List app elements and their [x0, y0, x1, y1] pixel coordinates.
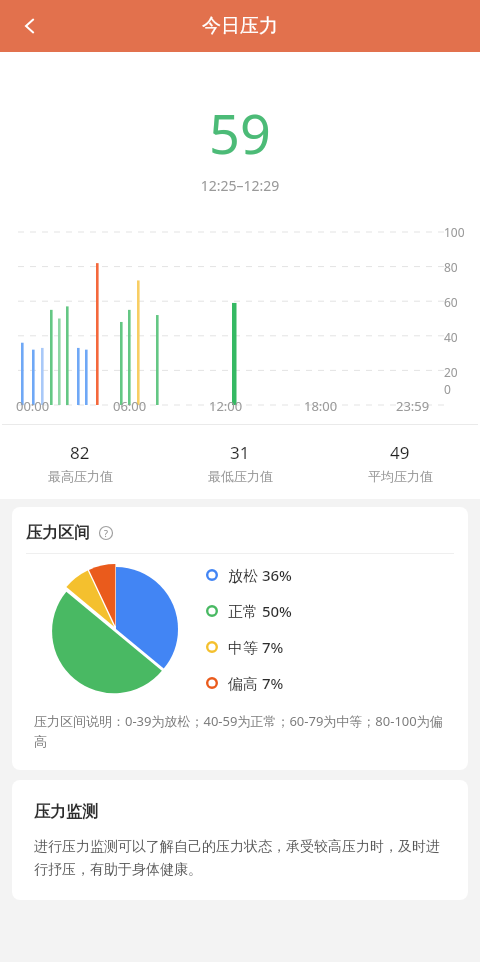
staticText: 40	[444, 329, 458, 345]
button[interactable]: 31	[160, 441, 320, 484]
staticText: 82	[70, 441, 90, 464]
button[interactable]: 压力区间	[12, 507, 468, 770]
staticText: 放松 36%	[228, 565, 292, 585]
staticText: 60	[444, 294, 458, 310]
staticText: 压力区间说明：0-39为放松；40-59为正常；60-79为中等；80-100为…	[34, 712, 450, 750]
staticText: 压力监测	[34, 802, 98, 822]
button[interactable]: Help	[96, 523, 116, 543]
staticText: 20	[444, 364, 458, 380]
staticText: 压力区间	[26, 523, 90, 543]
staticText: 最高压力值	[48, 468, 113, 484]
staticText: 进行压力监测可以了解自己的压力状态，承受较高压力时，及时进行抒压，有助于身体健康…	[34, 838, 446, 878]
button[interactable]: 49	[320, 441, 480, 484]
staticText: 最低压力值	[208, 468, 273, 484]
button[interactable]: 压力监测	[12, 780, 468, 900]
staticText: 80	[444, 259, 458, 275]
staticText: ?	[104, 527, 108, 539]
staticText: 12:25–12:29	[0, 176, 480, 195]
staticText: 06:00	[113, 397, 147, 415]
staticText: 49	[390, 441, 410, 464]
staticText: 平均压力值	[368, 468, 433, 484]
staticText: 正常 50%	[228, 601, 292, 621]
staticText: 100	[444, 224, 465, 240]
staticText: 00:00	[16, 397, 50, 415]
staticText: 0	[444, 381, 451, 397]
staticText: 18:00	[304, 397, 338, 415]
staticText: 12:00	[209, 397, 243, 415]
button[interactable]: Back	[8, 4, 52, 48]
staticText: 今日压力	[202, 14, 278, 38]
staticText: 31	[230, 441, 250, 464]
staticText: 23:59	[396, 397, 430, 415]
button[interactable]: 82	[0, 441, 160, 484]
staticText: 偏高 7%	[228, 673, 284, 693]
staticText: 中等 7%	[228, 637, 284, 657]
staticText: 59	[0, 96, 480, 170]
